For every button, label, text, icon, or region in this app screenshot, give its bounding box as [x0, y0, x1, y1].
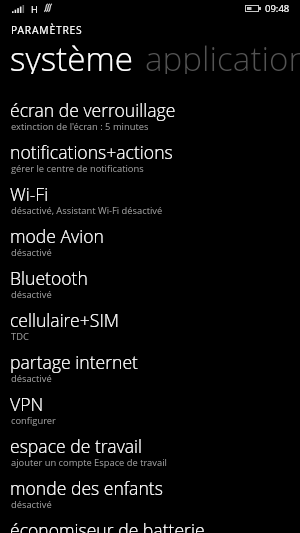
button[interactable]: VPN: [0, 388, 300, 430]
staticText: économiseur de batterie: [10, 518, 205, 533]
staticText: partage internet: [10, 350, 138, 374]
other: Roaming: [44, 3, 52, 12]
button[interactable]: Bluetooth: [0, 262, 300, 304]
staticText: mode Avion: [10, 224, 104, 248]
staticText: désactivé, Assistant Wi-Fi désactivé: [11, 204, 163, 217]
button[interactable]: cellulaire+SIM: [0, 304, 300, 346]
button[interactable]: économiseur de batterie: [0, 514, 300, 533]
staticText: écran de verrouillage: [10, 98, 176, 122]
staticText: ajouter un compte Espace de travail: [11, 456, 167, 469]
staticText: notifications+actions: [10, 140, 173, 164]
staticText: 09:48: [265, 2, 290, 15]
button[interactable]: écran de verrouillage: [0, 94, 300, 136]
staticText: Bluetooth: [10, 266, 88, 290]
staticText: désactivé: [11, 372, 52, 385]
staticText: espace de travail: [10, 434, 142, 458]
staticText: monde des enfants: [10, 476, 163, 500]
button[interactable]: espace de travail: [0, 430, 300, 472]
staticText: TDC: [11, 330, 29, 343]
staticText: extinction de l'écran : 5 minutes: [11, 120, 149, 133]
staticText: PARAMÈTRES: [11, 23, 83, 37]
staticText: H: [31, 3, 38, 15]
staticText: configurer: [11, 414, 56, 427]
staticText: désactivé: [11, 498, 52, 511]
other: Battery: [245, 5, 261, 12]
staticText: désactivé: [11, 246, 52, 259]
button[interactable]: notifications+actions: [0, 136, 300, 178]
staticText: cellulaire+SIM: [10, 308, 120, 332]
other: Signal strength: [12, 5, 25, 13]
button[interactable]: partage internet: [0, 346, 300, 388]
staticText: système: [10, 36, 133, 74]
button[interactable]: mode Avion: [0, 220, 300, 262]
staticText: désactivé: [11, 288, 52, 301]
staticText: Wi-Fi: [10, 182, 49, 206]
button[interactable]: système: [8, 42, 136, 80]
button[interactable]: monde des enfants: [0, 472, 300, 514]
button[interactable]: Wi-Fi: [0, 178, 300, 220]
button[interactable]: applications: [140, 42, 300, 80]
staticText: applications: [145, 36, 300, 74]
staticText: gérer le centre de notifications: [11, 162, 144, 175]
staticText: VPN: [10, 392, 44, 416]
